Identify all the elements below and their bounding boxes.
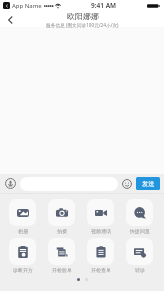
staticText: 诊断开方 (13, 267, 33, 273)
staticText: 拍摄 (57, 228, 67, 234)
button[interactable]: Voice input (4, 177, 17, 190)
staticText: 欧阳娜娜 (67, 11, 99, 21)
staticText: 开检查单 (91, 267, 111, 273)
staticText: 转诊 (135, 267, 145, 273)
button[interactable]: 快捷回复 (126, 199, 153, 234)
staticText: 发送 (142, 180, 155, 188)
button[interactable]: Emoji (121, 178, 133, 190)
staticText: App Name (12, 2, 42, 10)
staticText: 视频通话 (91, 228, 111, 234)
button[interactable]: 转诊 (126, 238, 153, 273)
staticText: 快捷回复 (130, 228, 150, 234)
button[interactable]: 诊断开方 (9, 238, 36, 273)
button[interactable]: 发送 (136, 177, 160, 190)
staticText: 9:41 AM (91, 1, 117, 10)
button[interactable]: 视频通话 (87, 199, 114, 234)
button[interactable]: Back (3, 13, 17, 27)
staticText: 服务信息 (图文问诊100元/24小/次) (46, 22, 119, 28)
button[interactable]: 开检验单 (48, 238, 75, 273)
staticText: 相册 (18, 228, 28, 234)
button[interactable]: 开检查单 (87, 238, 114, 273)
staticText: 开检验单 (52, 267, 72, 273)
button[interactable]: 相册 (9, 199, 36, 234)
button[interactable]: 拍摄 (48, 199, 75, 234)
